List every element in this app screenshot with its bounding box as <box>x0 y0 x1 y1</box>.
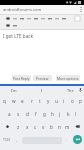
button[interactable]: , <box>13 133 21 146</box>
button[interactable]: Enter <box>71 133 84 146</box>
button[interactable]: t <box>36 94 44 107</box>
button[interactable]: Post Reply <box>12 75 31 81</box>
button[interactable]: d <box>23 107 32 120</box>
button[interactable]: b <box>47 120 55 133</box>
staticText: y <box>47 98 50 104</box>
button[interactable]: More options <box>77 5 84 14</box>
staticText: u <box>55 98 58 104</box>
button[interactable]: s <box>14 107 23 120</box>
staticText: k <box>67 111 70 117</box>
staticText: m <box>65 124 70 130</box>
staticText: z <box>17 124 20 130</box>
staticText: r <box>31 98 33 104</box>
staticText: w <box>12 98 16 104</box>
button[interactable]: u <box>52 94 60 107</box>
button[interactable]: m <box>63 120 71 133</box>
button[interactable]: I'm <box>0 86 28 94</box>
button[interactable]: w <box>9 94 18 107</box>
button[interactable]: f <box>32 107 40 120</box>
staticText: . <box>66 137 68 143</box>
button[interactable]: e <box>18 94 27 107</box>
button[interactable]: More options <box>56 75 80 81</box>
staticText: d <box>26 111 29 117</box>
button[interactable]: c <box>31 120 39 133</box>
staticText: b <box>50 124 53 130</box>
button[interactable]: Italic <box>11 15 18 22</box>
button[interactable]: I <box>28 86 56 94</box>
button[interactable]: Insert link <box>60 15 67 22</box>
button[interactable]: Backspace <box>71 120 84 133</box>
staticText: i <box>63 98 65 104</box>
staticText: f <box>35 111 37 117</box>
staticText: t <box>39 98 41 104</box>
button[interactable]: g <box>40 107 48 120</box>
staticText: I got LTE back <box>3 33 33 39</box>
button[interactable]: p <box>76 94 84 107</box>
button[interactable]: z <box>14 120 23 133</box>
staticText: l <box>75 111 77 117</box>
button[interactable]: x <box>23 120 31 133</box>
button[interactable]: Alignment <box>46 15 53 22</box>
button[interactable]: l <box>72 107 80 120</box>
button[interactable]: Voice input <box>76 86 84 94</box>
button[interactable]: Overflow menu <box>73 15 82 22</box>
button[interactable]: n <box>55 120 63 133</box>
staticText: j <box>59 111 61 117</box>
button[interactable]: o <box>68 94 76 107</box>
staticText: I <box>41 88 43 93</box>
staticText: androidforums.com <box>3 7 42 13</box>
staticText: Post Reply <box>13 76 30 81</box>
staticText: h <box>51 111 54 117</box>
staticText: s <box>17 111 20 117</box>
staticText: More options <box>57 76 79 81</box>
button[interactable]: r <box>27 94 36 107</box>
button[interactable]: h <box>48 107 56 120</box>
staticText: g <box>43 111 46 117</box>
staticText: c <box>34 124 37 130</box>
button[interactable]: Font size <box>32 15 39 22</box>
staticText: e <box>21 98 24 104</box>
staticText: p <box>79 98 82 104</box>
staticText: x <box>26 124 29 130</box>
button[interactable]: k <box>64 107 72 120</box>
button[interactable]: y <box>44 94 52 107</box>
button[interactable]: Shift <box>0 120 14 133</box>
staticText: a <box>8 111 11 117</box>
staticText: o <box>71 98 74 104</box>
button[interactable]: q <box>0 94 9 107</box>
button[interactable]: Preview <box>33 75 52 81</box>
button[interactable]: ?123 <box>0 133 13 146</box>
button[interactable]: v <box>39 120 47 133</box>
button[interactable]: Quote <box>4 22 11 29</box>
staticText: I'm <box>11 88 17 93</box>
button[interactable]: The <box>56 86 84 94</box>
button[interactable]: i <box>60 94 68 107</box>
button[interactable]: Underline <box>18 15 25 22</box>
button[interactable]: a <box>5 107 14 120</box>
button[interactable]: Text color <box>25 15 32 22</box>
staticText: , <box>16 137 18 143</box>
staticText: n <box>58 124 61 130</box>
button[interactable]: Code <box>11 22 18 29</box>
button[interactable]: List <box>53 15 60 22</box>
staticText: Preview <box>36 76 49 81</box>
staticText: q <box>3 98 6 104</box>
staticText: v <box>42 124 45 130</box>
button[interactable]: Bold <box>4 15 11 22</box>
button[interactable]: Font family <box>39 15 46 22</box>
staticText: The <box>67 88 74 93</box>
button[interactable]: j <box>56 107 64 120</box>
staticText: ?123 <box>3 138 10 142</box>
